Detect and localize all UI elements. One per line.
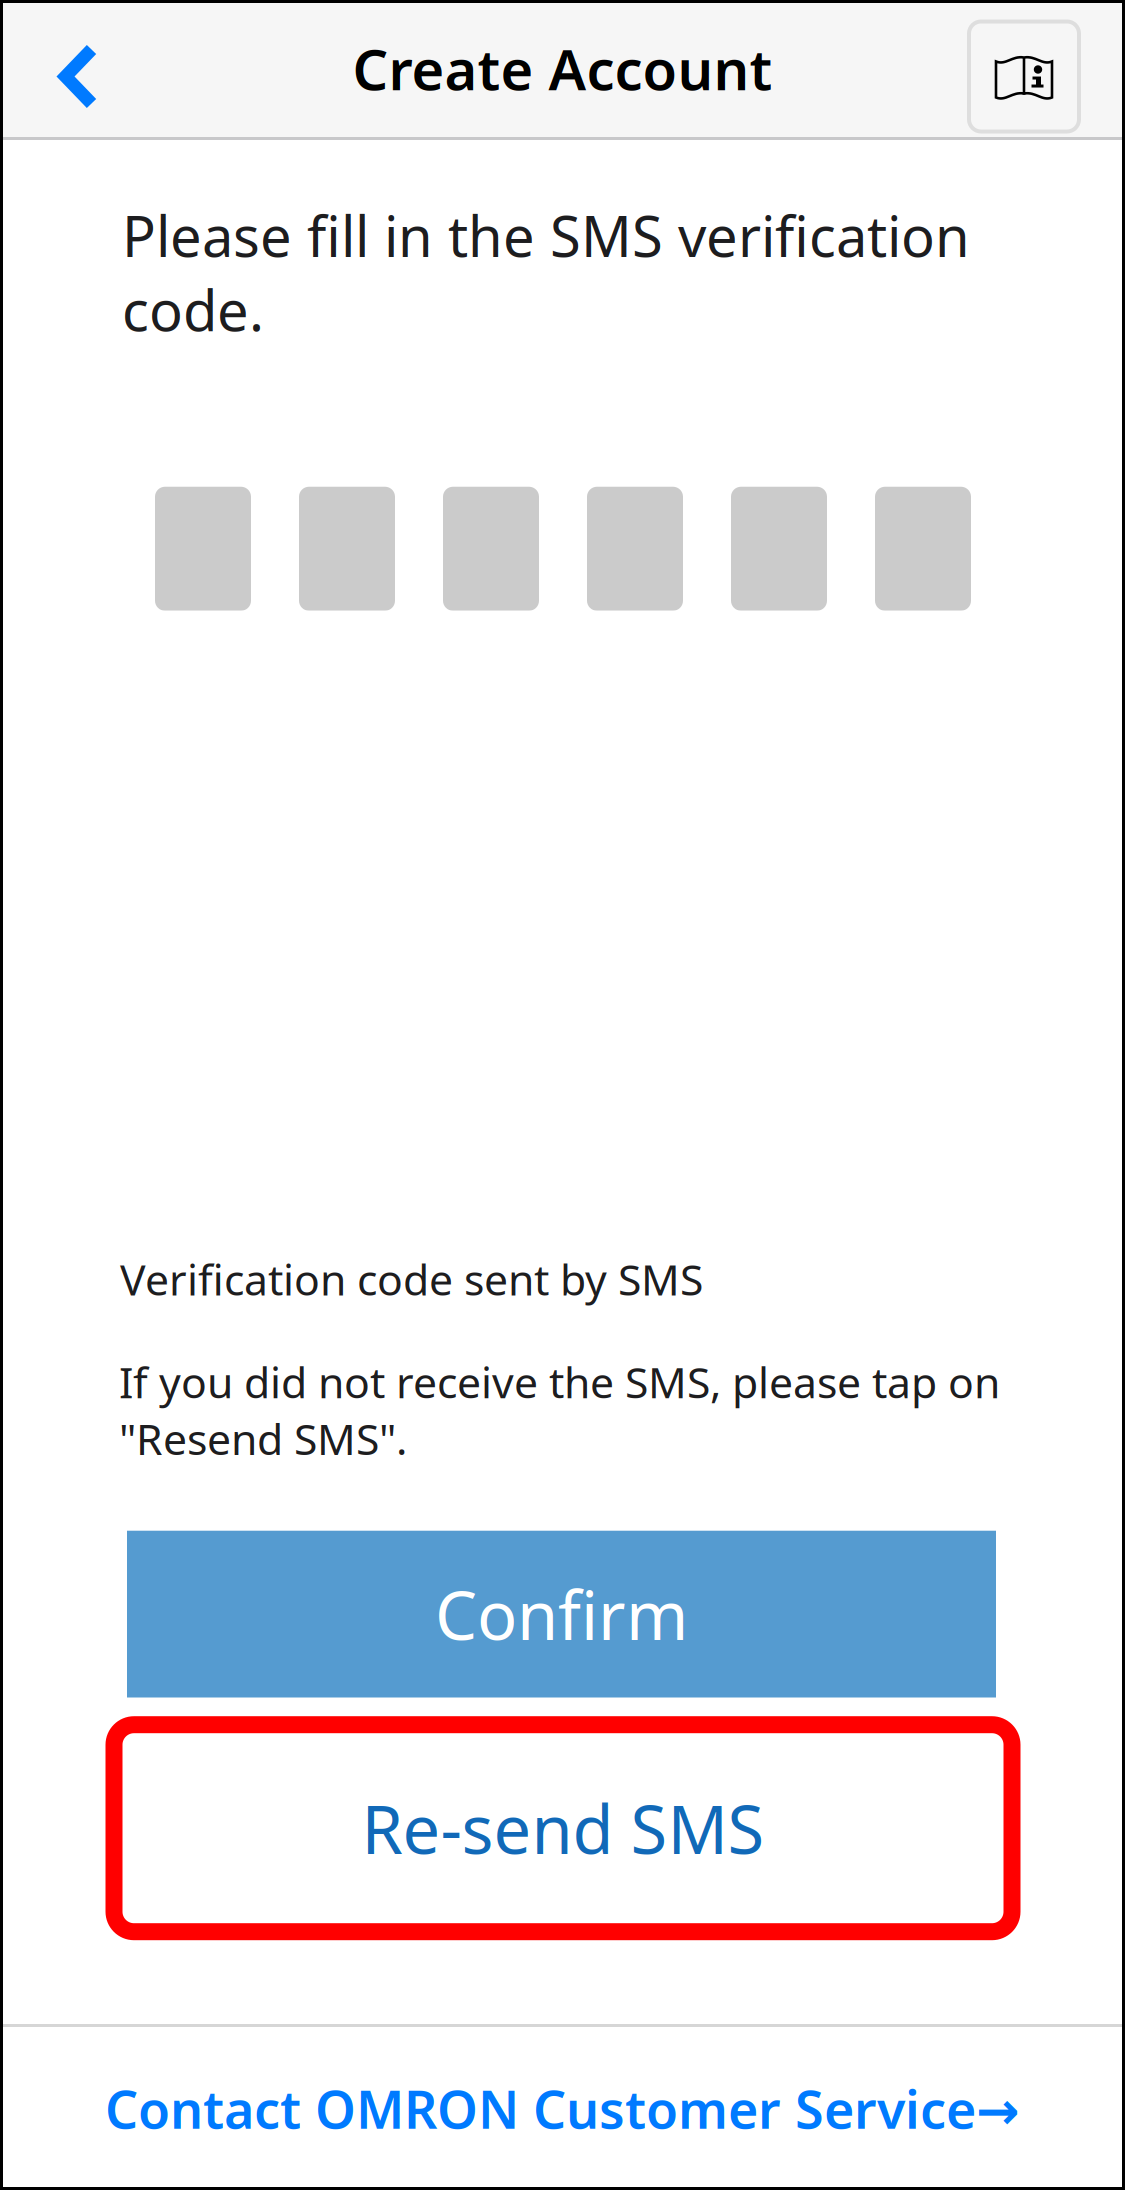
staticText: Confirm xyxy=(435,1570,688,1658)
staticText: Create Account xyxy=(352,31,772,106)
button[interactable]: Contact OMRON Customer Service→ xyxy=(0,2027,1125,2190)
staticText: Verification code sent by SMS xyxy=(120,1251,703,1307)
staticText: Re-send SMS xyxy=(361,1784,764,1872)
staticText: Please fill in the SMS verification code… xyxy=(122,198,970,347)
button[interactable]: Re-send SMS xyxy=(114,1725,1012,1932)
staticText: If you did not receive the SMS, please t… xyxy=(119,1353,1000,1467)
button[interactable]: Confirm xyxy=(127,1531,996,1698)
staticText: Contact OMRON Customer Service→ xyxy=(105,2074,1020,2143)
button[interactable]: Instructions for use xyxy=(969,21,1079,131)
button[interactable]: Back xyxy=(0,0,148,145)
